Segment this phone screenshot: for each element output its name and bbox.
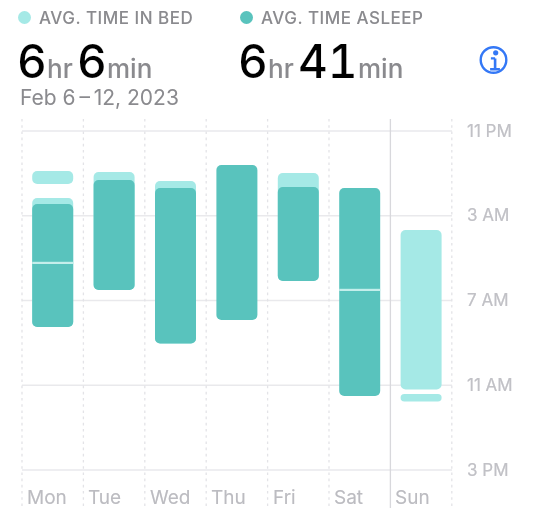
staticText: Sun <box>395 486 430 509</box>
staticText: hr <box>47 53 73 84</box>
staticText: Feb 6 – 12, 2023 <box>20 85 179 110</box>
staticText: 3 PM <box>467 460 509 481</box>
staticText: 11 AM <box>467 375 513 396</box>
staticText: Fri <box>273 486 296 509</box>
staticText: min <box>107 53 153 84</box>
staticText: min <box>358 53 404 84</box>
staticText: Thu <box>211 486 246 509</box>
staticText: 6 <box>238 33 268 89</box>
staticText: Mon <box>27 486 67 509</box>
staticText: 3 AM <box>467 205 510 226</box>
staticText: 11 PM <box>467 121 512 142</box>
staticText: 41 <box>298 33 358 89</box>
staticText: Wed <box>150 486 191 509</box>
staticText: AVG. TIME ASLEEP <box>261 8 424 29</box>
staticText: 7 AM <box>467 290 509 311</box>
staticText: 6 <box>77 33 107 89</box>
staticText: Tue <box>88 486 122 509</box>
staticText: hr <box>268 53 294 84</box>
staticText: Sat <box>334 486 364 509</box>
button[interactable] <box>478 44 510 76</box>
staticText: 6 <box>17 33 47 89</box>
staticText: AVG. TIME IN BED <box>39 8 194 29</box>
